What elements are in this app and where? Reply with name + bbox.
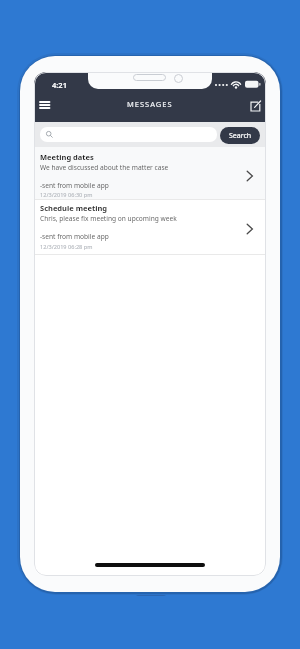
staticText: We have discussed about the matter case (40, 163, 169, 172)
button[interactable] (36, 96, 54, 114)
button[interactable] (246, 96, 266, 116)
staticText: 12/3/2019 06:28 pm (40, 243, 93, 251)
staticText: MESSAGES (127, 99, 173, 109)
button[interactable] (40, 127, 217, 142)
staticText: -sent from mobile app (40, 232, 109, 241)
staticText: Chris, please fix meeting on upcoming we… (40, 214, 177, 223)
staticText: -sent from mobile app (40, 181, 109, 190)
staticText: Schedule meeting (40, 203, 108, 213)
staticText: 12/3/2019 06:30 pm (40, 191, 93, 199)
button[interactable]: Schedule meeting (34, 200, 266, 255)
staticText: Search (229, 131, 252, 141)
staticText: 4:21 (52, 80, 67, 90)
button[interactable]: Search (220, 127, 260, 144)
button[interactable]: Meeting dates (34, 147, 266, 200)
staticText: Meeting dates (40, 152, 94, 162)
